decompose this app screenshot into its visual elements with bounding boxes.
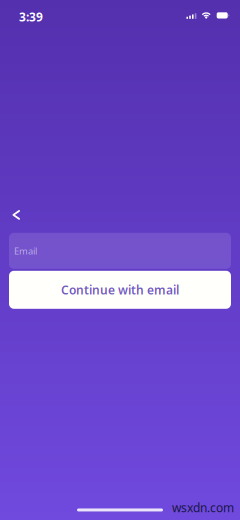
staticText: Email <box>14 245 37 257</box>
staticText: Continue with email <box>61 282 179 298</box>
button[interactable]: Back <box>0 204 32 226</box>
staticText: wsxdn.com <box>172 499 234 515</box>
staticText: 3:39 <box>19 9 43 25</box>
button[interactable]: Continue with email <box>0 271 240 309</box>
